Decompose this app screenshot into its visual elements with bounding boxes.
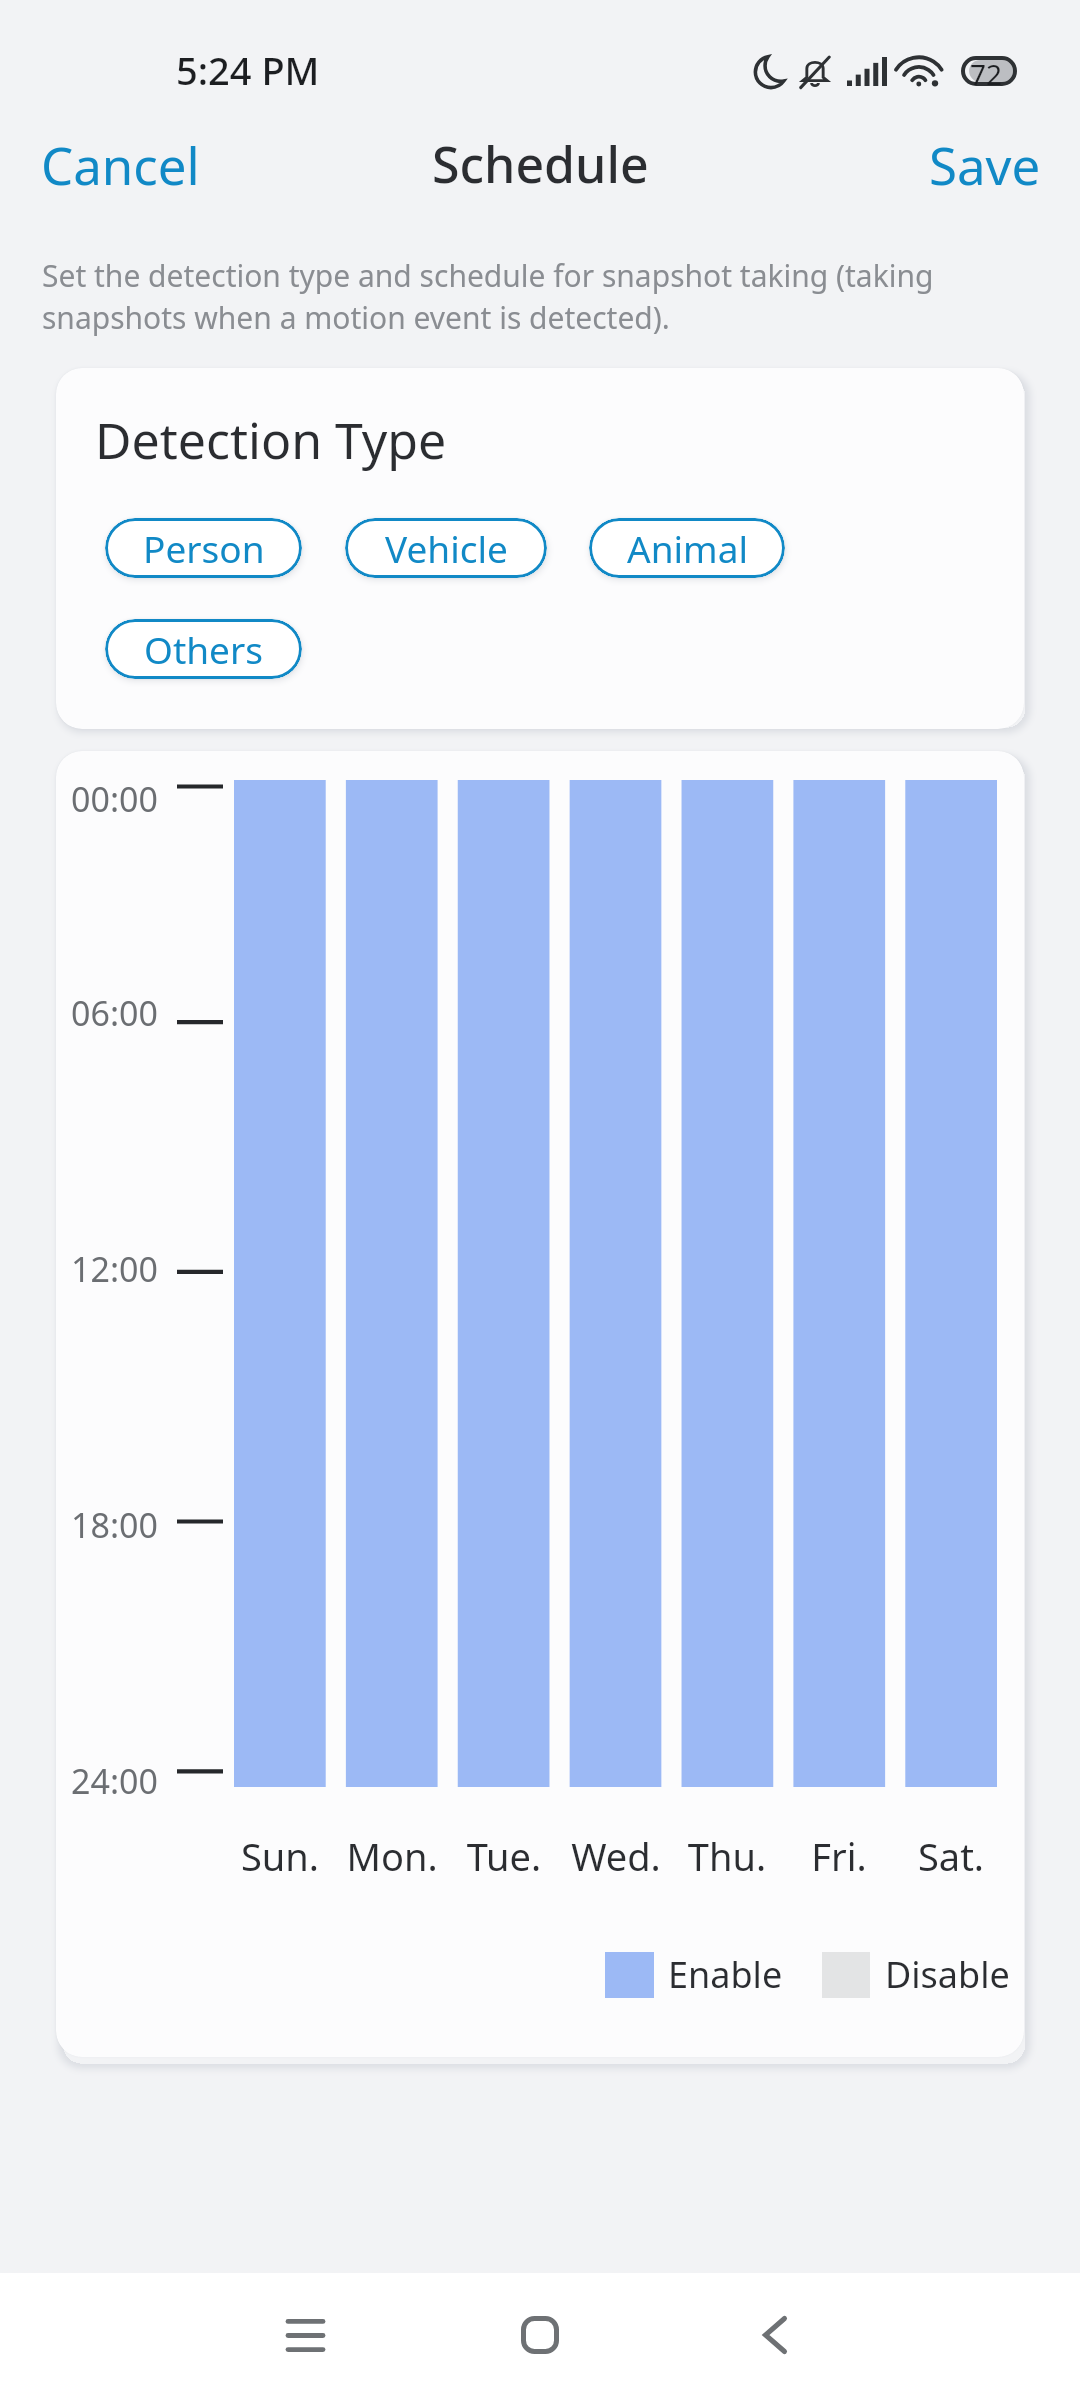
staticText: Disable (885, 1950, 1010, 1999)
staticText: 5:24 PM (176, 44, 320, 96)
staticText: Animal (627, 523, 748, 573)
button[interactable]: Others (105, 619, 302, 679)
staticText: 06:00 (71, 990, 158, 1036)
button[interactable]: Animal (589, 518, 785, 578)
staticText: 18:00 (71, 1502, 158, 1548)
staticText: 12:00 (71, 1246, 158, 1292)
staticText: Cancel (41, 130, 200, 199)
staticText: 72 (970, 55, 1003, 85)
staticText: Person (143, 523, 265, 573)
staticText: Set the detection type and schedule for … (42, 255, 972, 338)
staticText: Fri. (769, 1830, 909, 1882)
staticText: Mon. (322, 1830, 462, 1882)
staticText: Detection Type (95, 406, 447, 474)
staticText: Others (144, 624, 263, 674)
button[interactable]: Cancel (0, 116, 230, 213)
staticText: Tue. (434, 1830, 574, 1882)
staticText: Thu. (657, 1830, 797, 1882)
button[interactable]: Vehicle (345, 518, 547, 578)
button[interactable]: Recent apps (245, 2275, 365, 2395)
button[interactable]: Back (715, 2275, 835, 2395)
staticText: Vehicle (385, 523, 508, 573)
staticText: Save (929, 130, 1041, 199)
staticText: Sat. (881, 1830, 1021, 1882)
button[interactable]: Home (480, 2275, 600, 2395)
staticText: Enable (668, 1950, 783, 1999)
button[interactable]: Person (105, 518, 302, 578)
staticText: 00:00 (71, 776, 158, 822)
staticText: 24:00 (71, 1758, 158, 1804)
staticText: Wed. (546, 1830, 686, 1882)
button[interactable]: Save (899, 116, 1080, 213)
staticText: Schedule (432, 130, 649, 198)
staticText: Sun. (210, 1830, 350, 1882)
